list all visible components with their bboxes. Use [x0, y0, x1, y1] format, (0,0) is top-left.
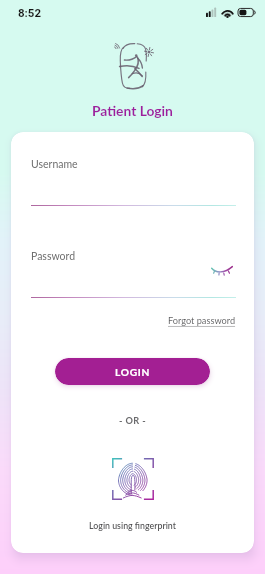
button[interactable]: Forgot password — [166, 312, 236, 328]
button[interactable]: Login using fingerprint — [112, 458, 154, 500]
staticText: 8:52 — [18, 6, 42, 19]
staticText: Password — [31, 250, 76, 263]
button[interactable]: Username — [31, 152, 236, 205]
staticText: - OR - — [119, 415, 147, 426]
staticText: Patient Login — [92, 102, 173, 119]
button[interactable]: LOGIN — [55, 358, 210, 385]
staticText: Login using fingerprint — [89, 520, 176, 531]
button[interactable]: Show password — [207, 258, 235, 278]
staticText: LOGIN — [115, 366, 151, 378]
button[interactable]: Password — [31, 244, 236, 297]
staticText: Forgot password — [168, 315, 236, 326]
staticText: Username — [31, 158, 78, 171]
